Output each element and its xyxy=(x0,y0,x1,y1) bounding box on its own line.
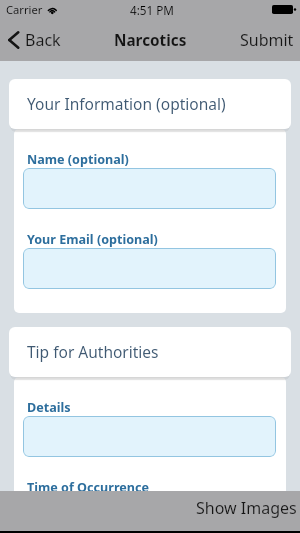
staticText: Back xyxy=(25,29,61,51)
staticText: Carrier xyxy=(6,2,43,17)
staticText: Time of Occurrence xyxy=(27,479,149,496)
button[interactable] xyxy=(23,168,276,209)
button[interactable]: Show Images xyxy=(0,491,300,531)
staticText: Narcotics xyxy=(114,30,187,51)
staticText: Name (optional) xyxy=(27,151,129,168)
button[interactable]: Tip for Authorities xyxy=(9,327,291,377)
button[interactable]: Submit xyxy=(234,24,296,57)
other: Battery full xyxy=(272,5,296,15)
staticText: Tip for Authorities xyxy=(27,341,159,362)
staticText: Details xyxy=(27,399,71,416)
button[interactable]: Your Information (optional) xyxy=(9,79,291,129)
staticText: Your Email (optional) xyxy=(27,231,158,248)
button[interactable] xyxy=(23,248,276,289)
other: Wi-Fi signal xyxy=(46,4,58,15)
staticText: Show Images xyxy=(196,497,297,519)
staticText: Submit xyxy=(240,29,294,51)
staticText: Your Information (optional) xyxy=(27,93,226,114)
button[interactable] xyxy=(23,416,276,457)
staticText: 4:51 PM xyxy=(130,2,174,18)
button[interactable]: Back xyxy=(4,24,66,57)
